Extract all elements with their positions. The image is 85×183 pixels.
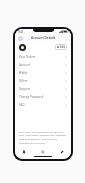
staticText: FAQ [19, 103, 25, 107]
button[interactable]: Profile [15, 147, 33, 156]
staticText: Over one crore buildings you can use you… [19, 130, 67, 145]
staticText: Your Orders [19, 55, 36, 59]
staticText: Account Details [31, 36, 56, 40]
staticText: Offers [19, 79, 28, 83]
button[interactable]: Profile photo [19, 44, 26, 51]
staticText: Edit [60, 45, 65, 49]
button[interactable]: Your Orders [15, 53, 71, 61]
button[interactable]: Search [33, 147, 52, 156]
button[interactable]: Wallet [15, 69, 71, 77]
button[interactable]: FAQ [15, 101, 71, 109]
button[interactable]: Edit [52, 147, 71, 156]
button[interactable]: Edit [55, 44, 67, 50]
staticText: Account [19, 63, 30, 67]
button[interactable]: Menu [18, 36, 22, 40]
button[interactable]: Offers [15, 77, 71, 85]
button[interactable]: Change Password [15, 93, 71, 101]
button[interactable]: Support [15, 85, 71, 93]
staticText: Change Password [19, 95, 44, 99]
staticText: 9:41 [18, 30, 24, 34]
staticText: Support [19, 87, 30, 91]
staticText: Wallet [19, 71, 28, 75]
button[interactable]: Account [15, 61, 71, 69]
